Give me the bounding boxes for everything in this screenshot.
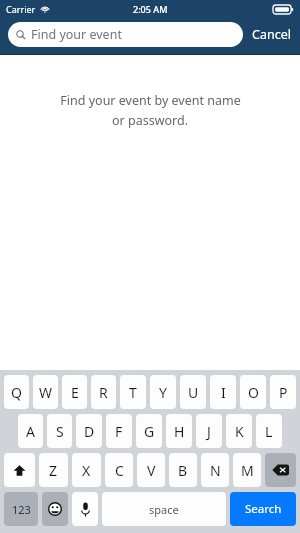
staticText: F: [115, 422, 123, 441]
button[interactable]: R: [91, 375, 116, 409]
staticText: space: [149, 502, 179, 517]
staticText: Y: [159, 383, 167, 402]
button[interactable]: U: [180, 375, 206, 409]
staticText: J: [207, 422, 211, 441]
button[interactable]: H: [166, 414, 192, 448]
button[interactable]: Search: [230, 492, 296, 526]
button[interactable]: 123: [4, 492, 38, 526]
staticText: Find your event: [31, 26, 122, 43]
staticText: L: [265, 422, 273, 441]
staticText: S: [56, 422, 64, 441]
button[interactable]: X: [72, 453, 101, 487]
staticText: Search: [245, 501, 282, 517]
button[interactable]: Shift: [4, 453, 35, 487]
button[interactable]: F: [106, 414, 132, 448]
button[interactable]: T: [120, 375, 146, 409]
staticText: E: [71, 383, 79, 402]
button[interactable]: Backspace: [265, 453, 296, 487]
staticText: M: [241, 461, 254, 480]
staticText: R: [99, 383, 108, 402]
button[interactable]: J: [196, 414, 222, 448]
staticText: U: [188, 383, 199, 402]
button[interactable]: Q: [4, 375, 29, 409]
staticText: N: [210, 461, 221, 480]
staticText: Z: [49, 461, 58, 480]
staticText: 123: [12, 502, 31, 517]
button[interactable]: V: [137, 453, 165, 487]
staticText: O: [248, 383, 259, 402]
staticText: Carrier: [6, 3, 36, 15]
staticText: Q: [11, 383, 22, 402]
button[interactable]: W: [33, 375, 58, 409]
staticText: W: [39, 383, 53, 402]
button[interactable]: B: [169, 453, 197, 487]
staticText: Cancel: [252, 26, 291, 43]
staticText: B: [178, 461, 188, 480]
staticText: P: [279, 383, 288, 402]
staticText: C: [115, 461, 124, 480]
button[interactable]: space: [102, 492, 226, 526]
button[interactable]: M: [233, 453, 261, 487]
staticText: A: [26, 422, 35, 441]
button[interactable]: O: [240, 375, 266, 409]
button[interactable]: C: [105, 453, 133, 487]
button[interactable]: K: [226, 414, 252, 448]
button[interactable]: E: [62, 375, 87, 409]
button[interactable]: P: [270, 375, 296, 409]
button[interactable]: N: [201, 453, 229, 487]
staticText: H: [174, 422, 185, 441]
button[interactable]: G: [136, 414, 162, 448]
staticText: or password.: [112, 112, 188, 129]
button[interactable]: Y: [150, 375, 176, 409]
button[interactable]: Emoji: [42, 492, 68, 526]
button[interactable]: L: [256, 414, 282, 448]
staticText: I: [221, 383, 226, 402]
button[interactable]: A: [18, 414, 43, 448]
button[interactable]: Find your event: [8, 22, 243, 47]
button[interactable]: Cancel: [243, 21, 300, 48]
button[interactable]: S: [47, 414, 72, 448]
staticText: T: [129, 383, 137, 402]
button[interactable]: I: [210, 375, 236, 409]
staticText: X: [82, 461, 91, 480]
staticText: V: [147, 461, 156, 480]
staticText: G: [144, 422, 155, 441]
button[interactable]: Z: [39, 453, 68, 487]
button[interactable]: Dictation: [72, 492, 98, 526]
staticText: D: [84, 422, 95, 441]
staticText: Find your event by event name: [60, 92, 241, 109]
staticText: K: [235, 422, 244, 441]
staticText: 2:05 AM: [133, 3, 168, 15]
button[interactable]: D: [76, 414, 102, 448]
